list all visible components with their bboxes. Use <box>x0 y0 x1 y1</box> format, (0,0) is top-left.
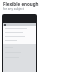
staticText: for any subject <box>3 7 24 11</box>
staticText: Flexible enough <box>3 1 39 7</box>
